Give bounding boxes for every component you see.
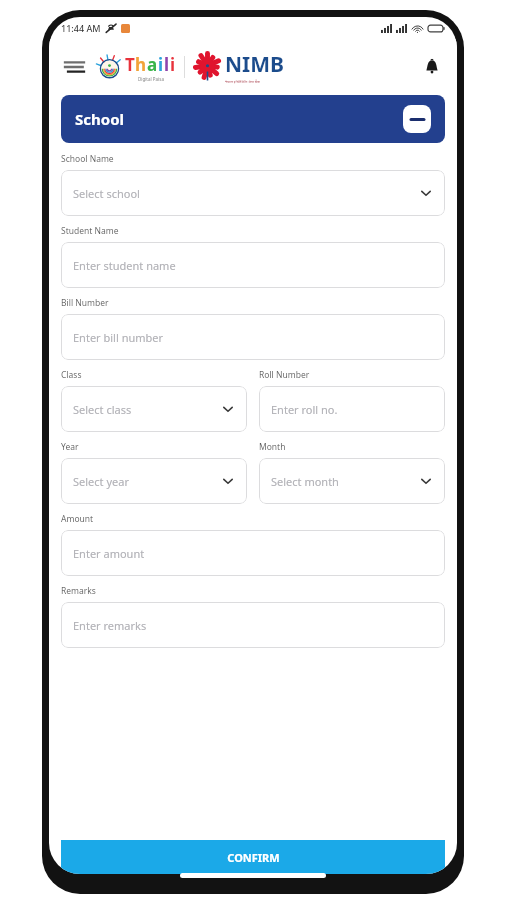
- staticText: Digital Paisa: [138, 76, 164, 82]
- button[interactable]: Enter bill number: [61, 314, 445, 360]
- button[interactable]: Collapse: [403, 105, 431, 133]
- staticText: Class: [61, 369, 82, 381]
- button[interactable]: Notifications: [415, 50, 449, 84]
- button[interactable]: Enter roll no.: [259, 386, 445, 432]
- staticText: i: [170, 53, 176, 76]
- staticText: School: [75, 109, 124, 129]
- button[interactable]: Select year: [61, 458, 247, 504]
- staticText: Enter student name: [73, 258, 176, 273]
- staticText: Month: [259, 441, 286, 453]
- staticText: Enter amount: [73, 546, 145, 561]
- staticText: Roll Number: [259, 369, 310, 381]
- button[interactable]: Enter remarks: [61, 602, 445, 648]
- staticText: Select year: [73, 474, 129, 489]
- staticText: Student Name: [61, 225, 119, 237]
- staticText: i: [158, 53, 164, 76]
- button[interactable]: Select month: [259, 458, 445, 504]
- staticText: Year: [61, 441, 79, 453]
- staticText: Select school: [73, 186, 140, 201]
- staticText: Enter roll no.: [271, 402, 338, 417]
- button[interactable]: Enter student name: [61, 242, 445, 288]
- staticText: a: [147, 53, 158, 76]
- staticText: Select class: [73, 402, 132, 417]
- staticText: Bill Number: [61, 297, 109, 309]
- staticText: l: [164, 53, 170, 76]
- button[interactable]: Enter amount: [61, 530, 445, 576]
- staticText: Amount: [61, 513, 94, 525]
- button[interactable]: Select school: [61, 170, 445, 216]
- staticText: Enter remarks: [73, 618, 147, 633]
- staticText: CONFIRM: [227, 850, 280, 865]
- staticText: Select month: [271, 474, 339, 489]
- button[interactable]: School: [61, 95, 445, 143]
- staticText: NIMB: [225, 50, 285, 79]
- staticText: h: [135, 53, 147, 76]
- staticText: 11:44 AM: [61, 22, 101, 34]
- staticText: नेपाल इन्भेष्टमेण्ट मेगा बैंक: [225, 79, 260, 84]
- staticText: T: [125, 53, 135, 76]
- staticText: School Name: [61, 153, 114, 165]
- button[interactable]: Select class: [61, 386, 247, 432]
- staticText: Enter bill number: [73, 330, 164, 345]
- button[interactable]: CONFIRM: [61, 840, 445, 874]
- button[interactable]: Menu: [57, 50, 91, 84]
- staticText: Remarks: [61, 585, 96, 597]
